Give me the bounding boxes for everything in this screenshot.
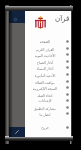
staticText: الإعدادات (27, 99, 63, 103)
button[interactable]: الأحاديث النبوية (25, 51, 71, 58)
button[interactable]: أذكار المساء (25, 64, 71, 71)
staticText: القرآن الكريم (27, 47, 63, 51)
button[interactable]: الصفحة (25, 38, 71, 45)
button[interactable]: اتصل بنا (25, 110, 71, 117)
button[interactable]: Bookmark (9, 127, 25, 137)
button[interactable]: مشاركة التطبيق (25, 104, 71, 111)
staticText: اتصل بنا (27, 112, 63, 116)
staticText: اتجاه القبلة (27, 93, 63, 97)
button[interactable]: أذكار الصباح (25, 58, 71, 65)
staticText: قرآن (55, 15, 70, 23)
staticText: السبحة الإلكترونية (27, 86, 63, 90)
staticText: الأدعية المأثورة (27, 73, 63, 77)
button[interactable]: خروج (25, 124, 71, 131)
button[interactable]: القرآن الكريم (25, 45, 71, 52)
button[interactable]: السبحة الإلكترونية (25, 84, 71, 91)
staticText: خروج (27, 126, 63, 130)
staticText: الصفحة (27, 40, 63, 44)
button[interactable]: مواقيت الصلاة (25, 78, 71, 85)
staticText: أذكار الصباح (27, 60, 63, 64)
button[interactable]: الأدعية المأثورة (25, 71, 71, 78)
button[interactable]: اتجاه القبلة (25, 91, 71, 98)
staticText: مواقيت الصلاة (27, 80, 63, 84)
staticText: الأحاديث النبوية (27, 53, 63, 57)
button[interactable]: Menu (9, 11, 25, 23)
button[interactable]: الإعدادات (25, 97, 71, 104)
staticText: مشاركة التطبيق (27, 106, 63, 110)
staticText: أذكار المساء (27, 66, 63, 70)
